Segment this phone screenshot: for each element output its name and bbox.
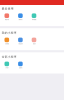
staticText: 小程序 bbox=[5, 67, 8, 68]
staticText: 腾讯视频 bbox=[32, 19, 36, 20]
button[interactable]: 小程序 bbox=[0, 62, 14, 69]
button[interactable]: 腾讯视频 bbox=[27, 13, 41, 21]
staticText: 美团外卖 bbox=[5, 19, 9, 20]
staticText: 我的小程序 bbox=[2, 31, 17, 35]
staticText: 滴滴出行 bbox=[18, 19, 22, 20]
button[interactable]: 滴滴出行 bbox=[14, 13, 27, 21]
staticText: 京东购物 bbox=[5, 43, 9, 44]
staticText: 拼多多 bbox=[32, 43, 35, 44]
staticText: 最近使用 bbox=[2, 7, 14, 10]
button[interactable]: 拼多多 bbox=[27, 38, 41, 45]
button[interactable]: 微信读书 bbox=[14, 38, 27, 45]
button[interactable]: 健康码 bbox=[14, 62, 27, 69]
button[interactable]: 美团外卖 bbox=[0, 13, 14, 21]
button[interactable]: 京东购物 bbox=[0, 38, 14, 45]
staticText: 微信读书 bbox=[18, 43, 22, 44]
staticText: 全部小程序 bbox=[2, 55, 17, 59]
